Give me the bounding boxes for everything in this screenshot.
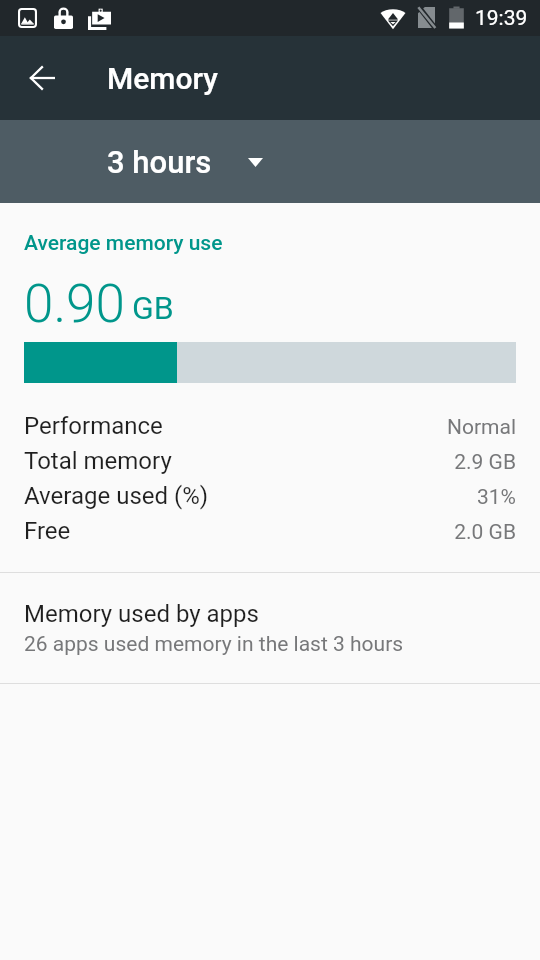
staticText: Memory bbox=[107, 61, 218, 96]
staticText: 26 apps used memory in the last 3 hours bbox=[24, 632, 404, 657]
staticText: 19:39 bbox=[475, 6, 528, 31]
staticText: 0.90 bbox=[24, 273, 125, 333]
button[interactable]: Time range: 3 hours bbox=[91, 132, 279, 192]
staticText: Normal bbox=[446, 415, 516, 440]
staticText: 2.0 GB bbox=[454, 520, 516, 545]
button[interactable]: Free bbox=[0, 513, 540, 548]
staticText: Average used (%) bbox=[24, 482, 209, 510]
button[interactable]: Navigate up bbox=[18, 54, 66, 102]
staticText: 2.9 GB bbox=[454, 450, 516, 475]
staticText: Total memory bbox=[24, 447, 172, 475]
staticText: Average memory use bbox=[24, 231, 223, 256]
staticText: GB bbox=[132, 289, 174, 327]
button[interactable]: Memory used by apps bbox=[0, 573, 540, 683]
staticText: 3 hours bbox=[107, 144, 212, 180]
button[interactable]: Average used (%) bbox=[0, 478, 540, 513]
staticText: Performance bbox=[24, 412, 163, 440]
button[interactable]: Total memory bbox=[0, 443, 540, 478]
staticText: 31% bbox=[477, 485, 516, 510]
button[interactable]: Performance bbox=[0, 408, 540, 443]
staticText: Memory used by apps bbox=[24, 600, 259, 628]
staticText: Free bbox=[24, 517, 71, 545]
